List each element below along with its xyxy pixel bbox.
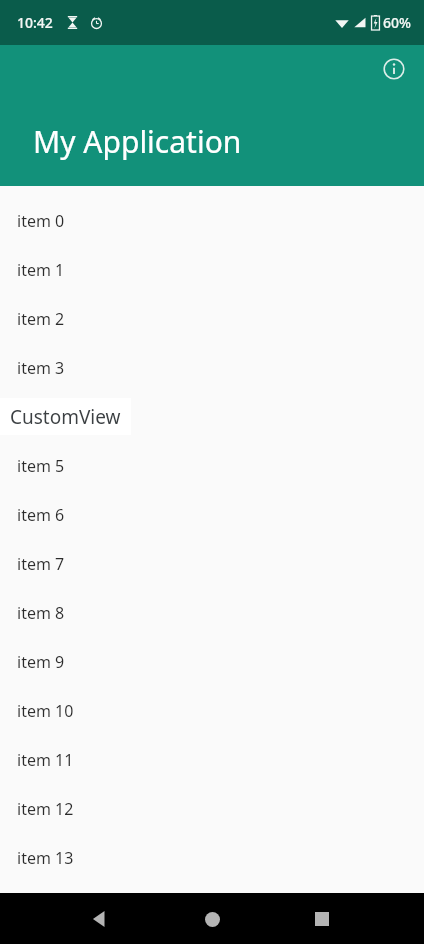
button[interactable]: item 5 (0, 441, 424, 490)
button[interactable]: item 1 (0, 245, 424, 294)
staticText: item 13 (17, 847, 74, 869)
button[interactable]: CustomView (0, 398, 131, 435)
staticText: item 1 (17, 259, 65, 281)
button[interactable]: Recent apps (300, 897, 344, 941)
staticText: item 0 (17, 210, 65, 232)
staticText: item 9 (17, 651, 65, 673)
staticText: item 5 (17, 455, 65, 477)
staticText: 60% (383, 13, 411, 32)
button[interactable]: item 2 (0, 294, 424, 343)
button[interactable]: item 13 (0, 833, 424, 882)
staticText: item 3 (17, 357, 65, 379)
staticText: item 2 (17, 308, 65, 330)
staticText: item 12 (17, 798, 74, 820)
staticText: item 8 (17, 602, 65, 624)
staticText: My Application (33, 121, 242, 162)
staticText: item 7 (17, 553, 65, 575)
staticText: item 10 (17, 700, 74, 722)
button[interactable]: Info (375, 50, 413, 88)
staticText: item 6 (17, 504, 65, 526)
staticText: 10:42 (17, 13, 53, 32)
button[interactable]: item 0 (0, 196, 424, 245)
button[interactable]: Back (78, 897, 122, 941)
button[interactable]: Home (190, 897, 234, 941)
button[interactable]: item 12 (0, 784, 424, 833)
button[interactable]: item 8 (0, 588, 424, 637)
button[interactable]: item 6 (0, 490, 424, 539)
button[interactable]: item 9 (0, 637, 424, 686)
staticText: item 11 (17, 749, 74, 771)
button[interactable]: item 10 (0, 686, 424, 735)
button[interactable]: item 7 (0, 539, 424, 588)
button[interactable]: item 3 (0, 343, 424, 392)
staticText: CustomView (10, 404, 121, 430)
button[interactable]: item 11 (0, 735, 424, 784)
